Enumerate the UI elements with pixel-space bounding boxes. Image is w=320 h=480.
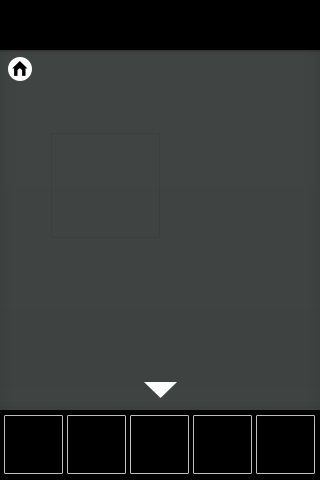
button[interactable]: Home — [8, 57, 32, 81]
button[interactable]: Inventory slot — [67, 415, 126, 474]
button[interactable]: Inventory slot — [193, 415, 252, 474]
button[interactable]: Inventory slot — [130, 415, 189, 474]
button[interactable]: Inventory slot — [4, 415, 63, 474]
button[interactable]: Inventory slot — [256, 415, 315, 474]
